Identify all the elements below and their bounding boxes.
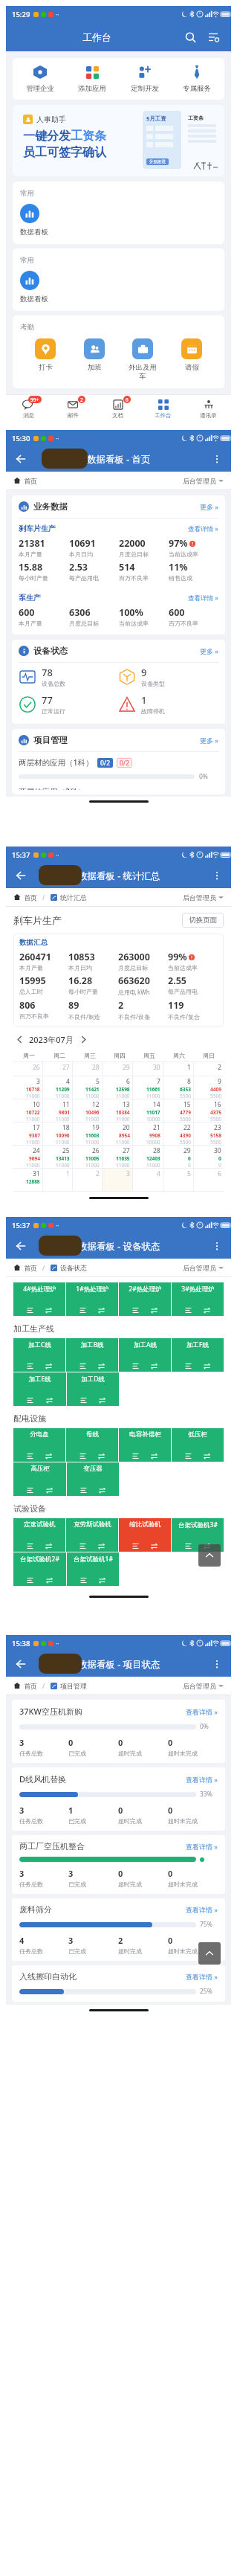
button[interactable]: Back (13, 1238, 29, 1254)
button[interactable]: 项目管理 (60, 1682, 87, 1690)
button[interactable]: 专属服务 (172, 65, 221, 93)
button[interactable]: 6 (194, 1169, 224, 1191)
button[interactable]: 3 (13, 1076, 42, 1099)
button[interactable]: 管理企业 (16, 65, 65, 93)
button[interactable]: More (210, 1239, 224, 1253)
button[interactable]: 13 (103, 1099, 132, 1122)
button[interactable]: 首页 (24, 1264, 37, 1272)
button[interactable]: 台架试验机3# (172, 1518, 224, 1552)
button[interactable]: 统计汇总 (60, 893, 87, 902)
button[interactable]: 4#热处理炉 (13, 1282, 65, 1316)
button[interactable]: Scroll to top (198, 1942, 221, 1965)
button[interactable]: 低压柜 (172, 1428, 224, 1462)
button[interactable]: 设备状态 (60, 1264, 87, 1272)
button[interactable]: 30 (133, 1062, 163, 1076)
button[interactable]: 后台管理员 (183, 1682, 224, 1690)
button[interactable]: 加班 (71, 338, 118, 372)
button[interactable]: 22 (163, 1122, 193, 1145)
button[interactable]: 两工厂空压机整合 (12, 1835, 225, 1894)
button[interactable]: 母线 (66, 1428, 118, 1462)
button[interactable]: 台架试验机1# (67, 1552, 119, 1586)
button[interactable]: 后台管理员 (183, 893, 224, 902)
button[interactable]: 定速试验机 (13, 1518, 65, 1552)
button[interactable]: 14 (133, 1099, 163, 1122)
button[interactable]: 16 (194, 1099, 224, 1122)
button[interactable]: 查看详情 » (188, 524, 218, 533)
button[interactable]: D线风机替换 (12, 1767, 225, 1831)
button[interactable]: 2 (73, 1169, 102, 1191)
button[interactable]: 加工B线 (66, 1338, 118, 1372)
button[interactable]: 工作台 (140, 395, 186, 422)
button[interactable]: More (210, 868, 224, 883)
button[interactable]: 通讯录 (186, 395, 231, 422)
button[interactable]: 5 (73, 1076, 102, 1099)
button[interactable]: Back (13, 451, 29, 467)
button[interactable]: 2 (51, 395, 95, 422)
button[interactable]: 9 (194, 1076, 224, 1099)
button[interactable]: 变压器 (67, 1462, 119, 1496)
button[interactable]: 首页 (24, 893, 37, 902)
button[interactable]: 4 (43, 1076, 72, 1099)
button[interactable]: 99+ (6, 395, 51, 422)
button[interactable]: 加工A线 (119, 1338, 171, 1372)
button[interactable]: Back (13, 1656, 29, 1672)
button[interactable]: Scroll to top (198, 1544, 221, 1567)
button[interactable]: 加工E线 (13, 1372, 66, 1406)
button[interactable]: 加工C线 (13, 1338, 65, 1372)
button[interactable]: Back (13, 867, 29, 884)
button[interactable]: 24 (13, 1146, 42, 1168)
button[interactable]: 27 (43, 1062, 72, 1076)
button[interactable]: 外出及用 车 (119, 338, 166, 381)
button[interactable]: 30 (194, 1146, 224, 1168)
button[interactable]: 更多 » (200, 502, 218, 511)
button[interactable]: 19 (73, 1122, 102, 1145)
button[interactable]: 26 (73, 1146, 102, 1168)
button[interactable]: More (210, 1657, 224, 1671)
button[interactable]: 25 (43, 1146, 72, 1168)
button[interactable]: 2 (194, 1062, 224, 1076)
button[interactable]: 废料筛分 (12, 1898, 225, 1961)
button[interactable]: 数据看板 (20, 271, 68, 303)
button[interactable]: 29 (163, 1146, 193, 1168)
button[interactable]: 首页 (24, 1682, 37, 1690)
button[interactable]: 电容补偿柜 (119, 1428, 171, 1462)
button[interactable]: 1#热处理炉 (66, 1282, 118, 1316)
button[interactable]: 首页 (24, 477, 37, 485)
button[interactable]: 2#热处理炉 (119, 1282, 171, 1316)
button[interactable]: 查看详情 » (188, 594, 218, 603)
button[interactable]: 数据看板 (20, 204, 68, 237)
button[interactable]: 8 (163, 1076, 193, 1099)
button[interactable]: 7 (133, 1076, 163, 1099)
button[interactable]: 缩比试验机 (119, 1518, 171, 1552)
button[interactable]: 添加应用 (68, 65, 117, 93)
button[interactable]: 4 (133, 1169, 163, 1191)
button[interactable]: 克劳斯试验机 (66, 1518, 118, 1552)
button[interactable]: 打卡 (22, 338, 69, 372)
button[interactable]: Search (181, 28, 200, 47)
button[interactable]: 20 (103, 1122, 132, 1145)
button[interactable]: 3#热处理炉 (172, 1282, 224, 1316)
button[interactable]: 31 (13, 1169, 42, 1191)
button[interactable]: 分电盘 (13, 1428, 65, 1462)
button[interactable]: 27 (103, 1146, 132, 1168)
button[interactable]: Next month (77, 1033, 89, 1045)
button[interactable]: 10 (13, 1099, 42, 1122)
button[interactable]: Settings (204, 28, 224, 47)
button[interactable]: 11 (43, 1099, 72, 1122)
button[interactable]: 6 (103, 1076, 132, 1099)
button[interactable]: 人事助手 (13, 105, 224, 176)
button[interactable]: 1 (163, 1062, 193, 1076)
button[interactable]: 台架试验机2# (13, 1552, 66, 1586)
button[interactable]: 5 (163, 1169, 193, 1191)
button[interactable]: 高压柜 (13, 1462, 66, 1496)
button[interactable]: 后台管理员 (183, 1264, 224, 1272)
button[interactable]: Previous month (13, 1033, 25, 1045)
button[interactable]: 18 (43, 1122, 72, 1145)
button[interactable]: 29 (103, 1062, 132, 1076)
button[interactable]: More (210, 452, 224, 466)
button[interactable]: 12 (73, 1099, 102, 1122)
button[interactable]: 28 (133, 1146, 163, 1168)
button[interactable]: 21 (133, 1122, 163, 1145)
button[interactable]: 加工F线 (172, 1338, 224, 1372)
button[interactable]: 入线擦印自动化 (12, 1965, 225, 2002)
